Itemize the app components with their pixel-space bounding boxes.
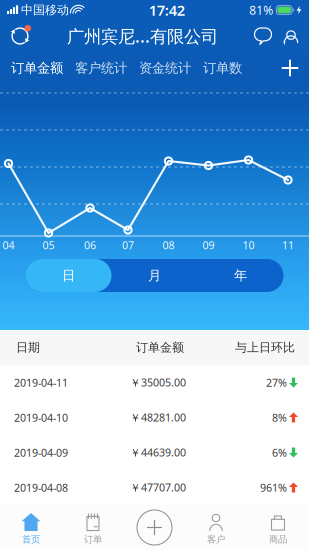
staticText: 订单金额 <box>11 60 63 76</box>
staticText: 10 <box>242 238 254 252</box>
staticText: 2019-04-11 <box>14 375 68 390</box>
staticText: 订单金额 <box>136 340 184 355</box>
staticText: ￥35005.00 <box>130 375 186 390</box>
button[interactable]: 2019-04-09 <box>0 435 309 470</box>
staticText: ￥48281.00 <box>130 410 186 425</box>
button[interactable]: Profile <box>277 20 305 52</box>
button[interactable]: 订单 <box>62 505 124 550</box>
staticText: 日 <box>62 267 75 284</box>
button[interactable]: 日 <box>25 259 111 292</box>
button[interactable]: 年 <box>197 259 283 292</box>
staticText: 年 <box>234 267 247 284</box>
staticText: 客户 <box>207 533 225 545</box>
staticText: 961% <box>260 480 287 495</box>
staticText: 17:42 <box>149 0 185 20</box>
button[interactable]: 首页 <box>0 505 62 550</box>
staticText: 广州宾尼...有限公司 <box>67 24 218 47</box>
button[interactable]: 月 <box>111 259 197 292</box>
staticText: 订单 <box>84 533 102 545</box>
staticText: 2019-04-09 <box>14 445 68 460</box>
button[interactable]: 2019-04-08 <box>0 470 309 505</box>
staticText: 08 <box>162 238 174 252</box>
button[interactable]: Add <box>275 53 305 83</box>
staticText: 81% <box>249 2 273 18</box>
staticText: 客户统计 <box>75 60 127 76</box>
button[interactable]: Refresh <box>4 20 36 52</box>
button[interactable]: Messages <box>249 20 277 52</box>
button[interactable]: 订单金额 <box>11 52 75 84</box>
staticText: 月 <box>148 267 161 284</box>
staticText: 27% <box>266 375 287 390</box>
staticText: 2019-04-10 <box>14 410 68 425</box>
staticText: 06 <box>84 238 96 252</box>
button[interactable]: 客户 <box>185 505 247 550</box>
staticText: 与上日环比 <box>235 340 295 355</box>
staticText: 订单数 <box>203 60 242 76</box>
button[interactable]: 客户统计 <box>75 52 139 84</box>
staticText: 8% <box>272 410 287 425</box>
staticText: ￥47707.00 <box>130 480 186 495</box>
button[interactable]: 商品 <box>247 505 309 550</box>
button[interactable]: 2019-04-11 <box>0 365 309 400</box>
button[interactable]: 资金统计 <box>139 52 203 84</box>
staticText: 11 <box>282 238 294 252</box>
staticText: 2019-04-08 <box>14 480 68 495</box>
staticText: 6% <box>272 445 287 460</box>
staticText: 中国移动 <box>21 3 69 17</box>
staticText: 05 <box>42 238 54 252</box>
staticText: 04 <box>2 238 14 252</box>
staticText: 09 <box>202 238 214 252</box>
staticText: 07 <box>122 238 134 252</box>
button[interactable]: 2019-04-10 <box>0 400 309 435</box>
staticText: ￥44639.00 <box>130 445 186 460</box>
staticText: 商品 <box>269 533 287 545</box>
staticText: 首页 <box>22 533 40 545</box>
button[interactable]: 订单数 <box>203 52 254 84</box>
button[interactable]: New <box>124 505 185 550</box>
staticText: 资金统计 <box>139 60 191 76</box>
staticText: 日期 <box>16 340 40 355</box>
